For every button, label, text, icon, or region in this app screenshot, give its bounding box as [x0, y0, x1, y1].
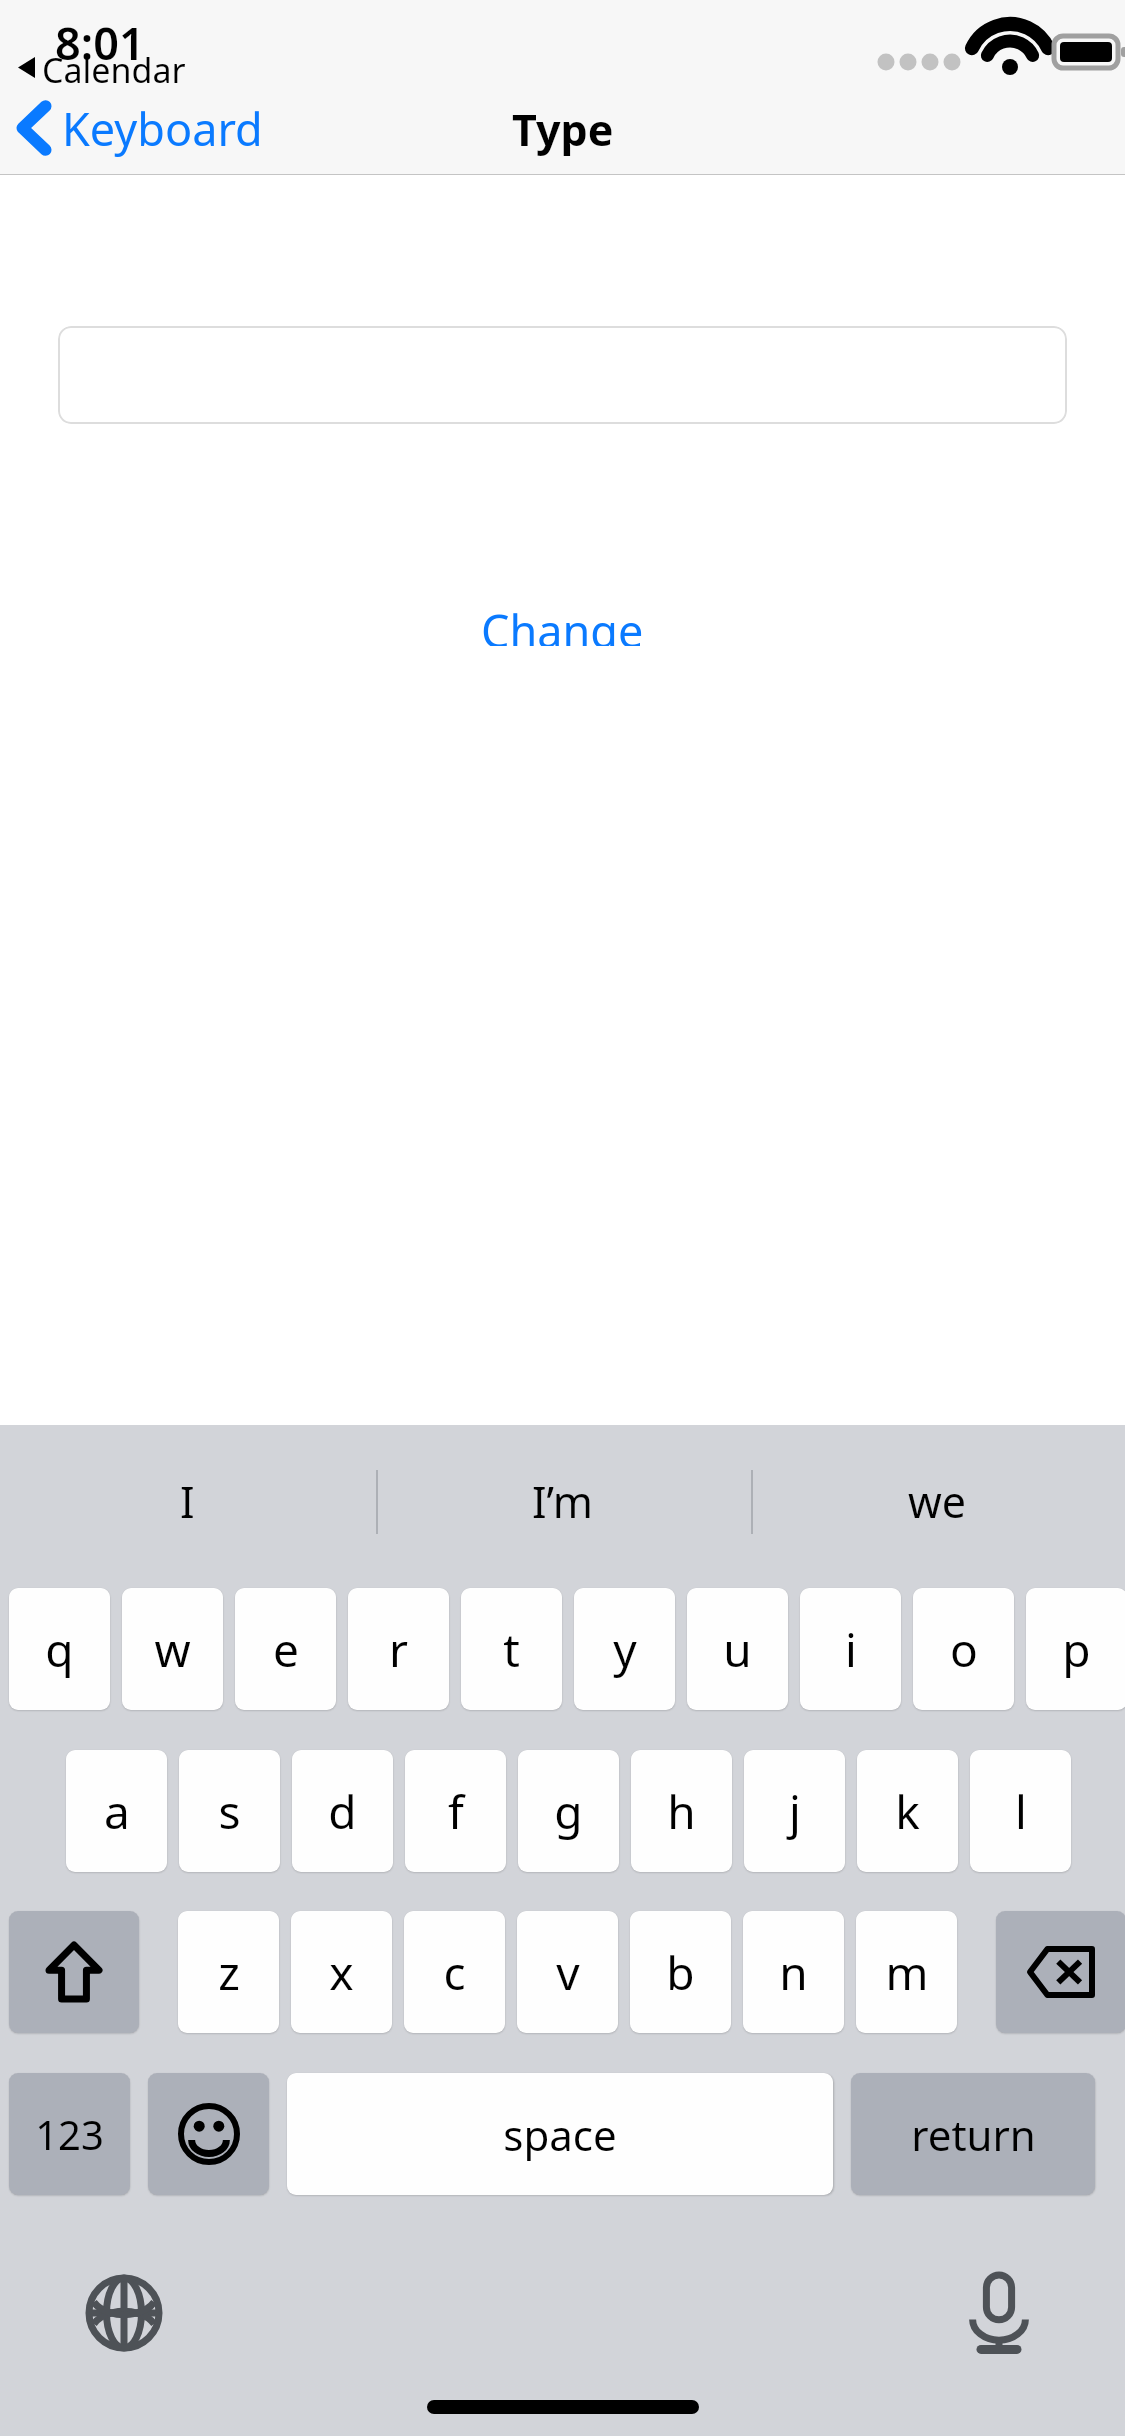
button[interactable]: u [687, 1588, 788, 1710]
button[interactable]: w [122, 1588, 223, 1710]
button[interactable]: v [517, 1911, 618, 2033]
staticText: f [448, 1780, 464, 1843]
staticText: n [779, 1941, 808, 2004]
staticText: g [554, 1780, 583, 1843]
button[interactable]: f [405, 1750, 506, 1872]
button[interactable]: s [179, 1750, 280, 1872]
staticText: r [389, 1618, 408, 1681]
button[interactable]: g [518, 1750, 619, 1872]
staticText: s [218, 1780, 241, 1843]
staticText: Change [481, 600, 644, 646]
staticText: h [667, 1780, 696, 1843]
staticText: m [885, 1941, 929, 2004]
staticText: k [895, 1780, 920, 1843]
button[interactable]: I [0, 1425, 375, 1577]
staticText: b [666, 1941, 695, 2004]
button[interactable]: Shift [9, 1911, 139, 2033]
button[interactable]: Emoji [148, 2073, 269, 2195]
button[interactable]: Calendar [18, 47, 186, 87]
button[interactable]: p [1026, 1588, 1125, 1710]
staticText: u [723, 1618, 752, 1681]
button[interactable]: z [178, 1911, 279, 2033]
staticText: l [1015, 1780, 1027, 1843]
button[interactable]: d [292, 1750, 393, 1872]
button[interactable]: j [744, 1750, 845, 1872]
button[interactable]: b [630, 1911, 731, 2033]
staticText: i [845, 1618, 857, 1681]
button[interactable]: a [66, 1750, 167, 1872]
staticText: y [613, 1618, 637, 1681]
button[interactable]: I’m [375, 1425, 750, 1577]
button[interactable]: i [800, 1588, 901, 1710]
button[interactable]: Change [457, 592, 668, 654]
button[interactable]: e [235, 1588, 336, 1710]
staticText: q [45, 1618, 74, 1681]
button[interactable]: r [348, 1588, 449, 1710]
staticText: 8:01 [55, 12, 145, 73]
button[interactable]: q [9, 1588, 110, 1710]
staticText: t [503, 1618, 520, 1681]
button[interactable]: o [913, 1588, 1014, 1710]
staticText: we [908, 1472, 967, 1531]
button[interactable]: return [851, 2073, 1095, 2195]
button[interactable]: n [743, 1911, 844, 2033]
staticText: z [218, 1941, 240, 2004]
button[interactable]: y [574, 1588, 675, 1710]
staticText: c [443, 1941, 466, 2004]
staticText: a [104, 1780, 130, 1843]
button[interactable]: m [856, 1911, 957, 2033]
staticText: Calendar [42, 47, 186, 87]
staticText: I’m [532, 1472, 594, 1531]
button[interactable]: x [291, 1911, 392, 2033]
button[interactable]: Next keyboard [64, 2253, 184, 2373]
button[interactable]: Dictate [939, 2253, 1059, 2373]
staticText: return [911, 2106, 1036, 2163]
button[interactable]: l [970, 1750, 1071, 1872]
button[interactable] [58, 326, 1067, 424]
button[interactable]: 123 [9, 2073, 130, 2195]
staticText: 123 [35, 2107, 104, 2161]
button[interactable]: t [461, 1588, 562, 1710]
staticText: Type [512, 100, 614, 156]
staticText: j [789, 1780, 801, 1843]
button[interactable]: c [404, 1911, 505, 2033]
staticText: Keyboard [62, 98, 263, 158]
staticText: v [556, 1941, 580, 2004]
button[interactable]: k [857, 1750, 958, 1872]
button[interactable]: Keyboard [16, 98, 263, 158]
staticText: I [180, 1472, 195, 1531]
button[interactable]: Backspace [996, 1911, 1125, 2033]
staticText: space [503, 2106, 617, 2163]
staticText: x [329, 1941, 354, 2004]
button[interactable]: we [750, 1425, 1125, 1577]
button[interactable]: space [287, 2073, 833, 2195]
staticText: o [950, 1618, 978, 1681]
button[interactable]: h [631, 1750, 732, 1872]
staticText: w [154, 1618, 191, 1681]
staticText: e [273, 1618, 299, 1681]
staticText: p [1062, 1618, 1091, 1681]
staticText: d [328, 1780, 357, 1843]
